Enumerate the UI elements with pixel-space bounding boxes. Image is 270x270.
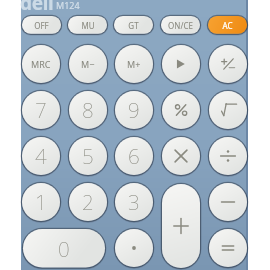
staticText: 0: [58, 235, 70, 263]
staticText: M−: [81, 58, 95, 70]
staticText: 4: [35, 142, 47, 170]
staticText: 9: [128, 96, 140, 124]
button[interactable]: 4: [22, 137, 60, 175]
button[interactable]: Decimal point: [115, 229, 153, 267]
staticText: AC: [222, 20, 233, 31]
button[interactable]: Equals: [209, 229, 247, 267]
button[interactable]: 6: [115, 137, 153, 175]
button[interactable]: M+: [115, 45, 153, 83]
staticText: deli: [20, 0, 54, 16]
button[interactable]: MU: [68, 16, 107, 34]
staticText: 7: [35, 96, 47, 124]
staticText: GT: [128, 20, 139, 31]
staticText: MU: [81, 20, 95, 31]
staticText: M+: [127, 58, 141, 70]
button[interactable]: Divide: [209, 137, 247, 175]
staticText: OFF: [34, 20, 49, 31]
staticText: 5: [82, 142, 94, 170]
button[interactable]: 7: [22, 91, 60, 129]
button[interactable]: 1: [22, 183, 60, 221]
button[interactable]: OFF: [22, 16, 61, 34]
button[interactable]: 3: [115, 183, 153, 221]
button[interactable]: Plus minus: [209, 45, 247, 83]
button[interactable]: Percent: [162, 91, 200, 129]
button[interactable]: GT: [114, 16, 153, 34]
button[interactable]: Multiply: [162, 137, 200, 175]
staticText: MRC: [31, 58, 51, 70]
button[interactable]: MRC: [22, 45, 60, 83]
staticText: 1: [35, 188, 47, 216]
staticText: ON/CE: [168, 20, 193, 31]
button[interactable]: Minus: [209, 183, 247, 221]
button[interactable]: 5: [69, 137, 107, 175]
button[interactable]: ON/CE: [161, 16, 200, 34]
button[interactable]: Plus: [162, 184, 200, 268]
button[interactable]: 2: [69, 183, 107, 221]
button[interactable]: 8: [69, 91, 107, 129]
button[interactable]: M−: [69, 45, 107, 83]
button[interactable]: 0: [23, 229, 105, 268]
staticText: M124: [56, 0, 80, 11]
staticText: 2: [82, 188, 94, 216]
staticText: 6: [128, 142, 140, 170]
button[interactable]: Play: [162, 45, 200, 83]
staticText: 3: [128, 188, 140, 216]
button[interactable]: 9: [115, 91, 153, 129]
button[interactable]: AC: [208, 16, 247, 34]
staticText: 8: [82, 96, 94, 124]
button[interactable]: Square root: [209, 91, 247, 129]
